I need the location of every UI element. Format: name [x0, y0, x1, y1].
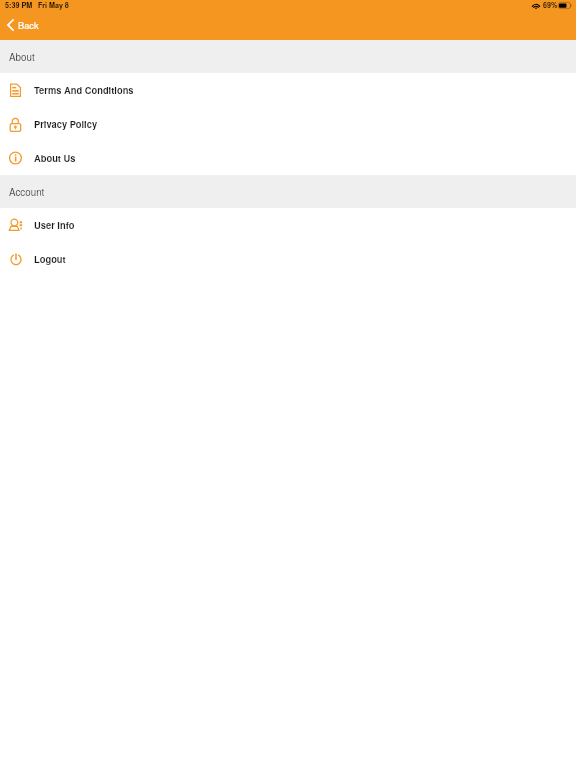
staticText: Fri May 8: [38, 0, 69, 10]
other: Logout: [8, 252, 23, 267]
button[interactable]: Terms and conditions: [0, 73, 576, 107]
button[interactable]: Privacy policy: [0, 107, 576, 141]
staticText: About Us: [34, 151, 76, 164]
staticText: Account: [9, 185, 45, 199]
button[interactable]: Back: [3, 16, 51, 34]
staticText: About: [9, 50, 35, 64]
other: Battery 69 percent: [558, 2, 572, 9]
staticText: Logout: [34, 252, 66, 265]
staticText: User Info: [34, 218, 75, 231]
staticText: 69%: [543, 0, 558, 10]
other: About us: [8, 151, 23, 166]
staticText: Terms And Conditions: [34, 83, 134, 96]
other: Wi-Fi: [532, 3, 540, 9]
other: User info: [8, 218, 23, 233]
other: Privacy policy: [8, 117, 23, 132]
button[interactable]: Logout: [0, 242, 576, 276]
staticText: Privacy Policy: [34, 117, 98, 130]
staticText: Back: [18, 18, 39, 31]
button[interactable]: User info: [0, 208, 576, 242]
other: Terms and conditions: [8, 83, 23, 98]
button[interactable]: About us: [0, 141, 576, 175]
staticText: 5:39 PM: [5, 0, 33, 10]
